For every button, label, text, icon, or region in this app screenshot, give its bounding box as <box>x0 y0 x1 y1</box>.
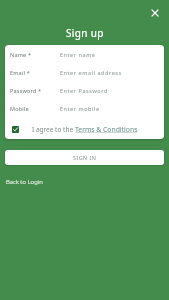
button[interactable]: Close <box>146 4 163 21</box>
staticText: I agree to the <box>32 125 75 134</box>
button[interactable]: Email * <box>5 63 164 81</box>
staticText: SIGN IN <box>73 154 97 161</box>
staticText: Sign up <box>66 26 104 40</box>
staticText: Email * <box>10 69 30 76</box>
button[interactable]: Name * <box>5 45 164 63</box>
staticText: Mobile <box>10 105 29 112</box>
staticText: Enter name <box>60 51 96 58</box>
button[interactable]: I agree to the <box>5 119 164 139</box>
staticText: Enter Password <box>60 87 108 94</box>
staticText: Name * <box>10 51 32 58</box>
button[interactable]: Mobile <box>5 99 164 117</box>
staticText: Enter email address <box>60 69 122 76</box>
staticText: Back to Login <box>6 178 43 186</box>
staticText: Password * <box>10 87 42 94</box>
button[interactable]: Password * <box>5 81 164 99</box>
button[interactable]: SIGN IN <box>5 150 164 165</box>
staticText: Terms & Conditions <box>75 125 138 134</box>
staticText: Enter mobile <box>60 105 100 112</box>
button[interactable]: Back to Login <box>4 176 45 188</box>
